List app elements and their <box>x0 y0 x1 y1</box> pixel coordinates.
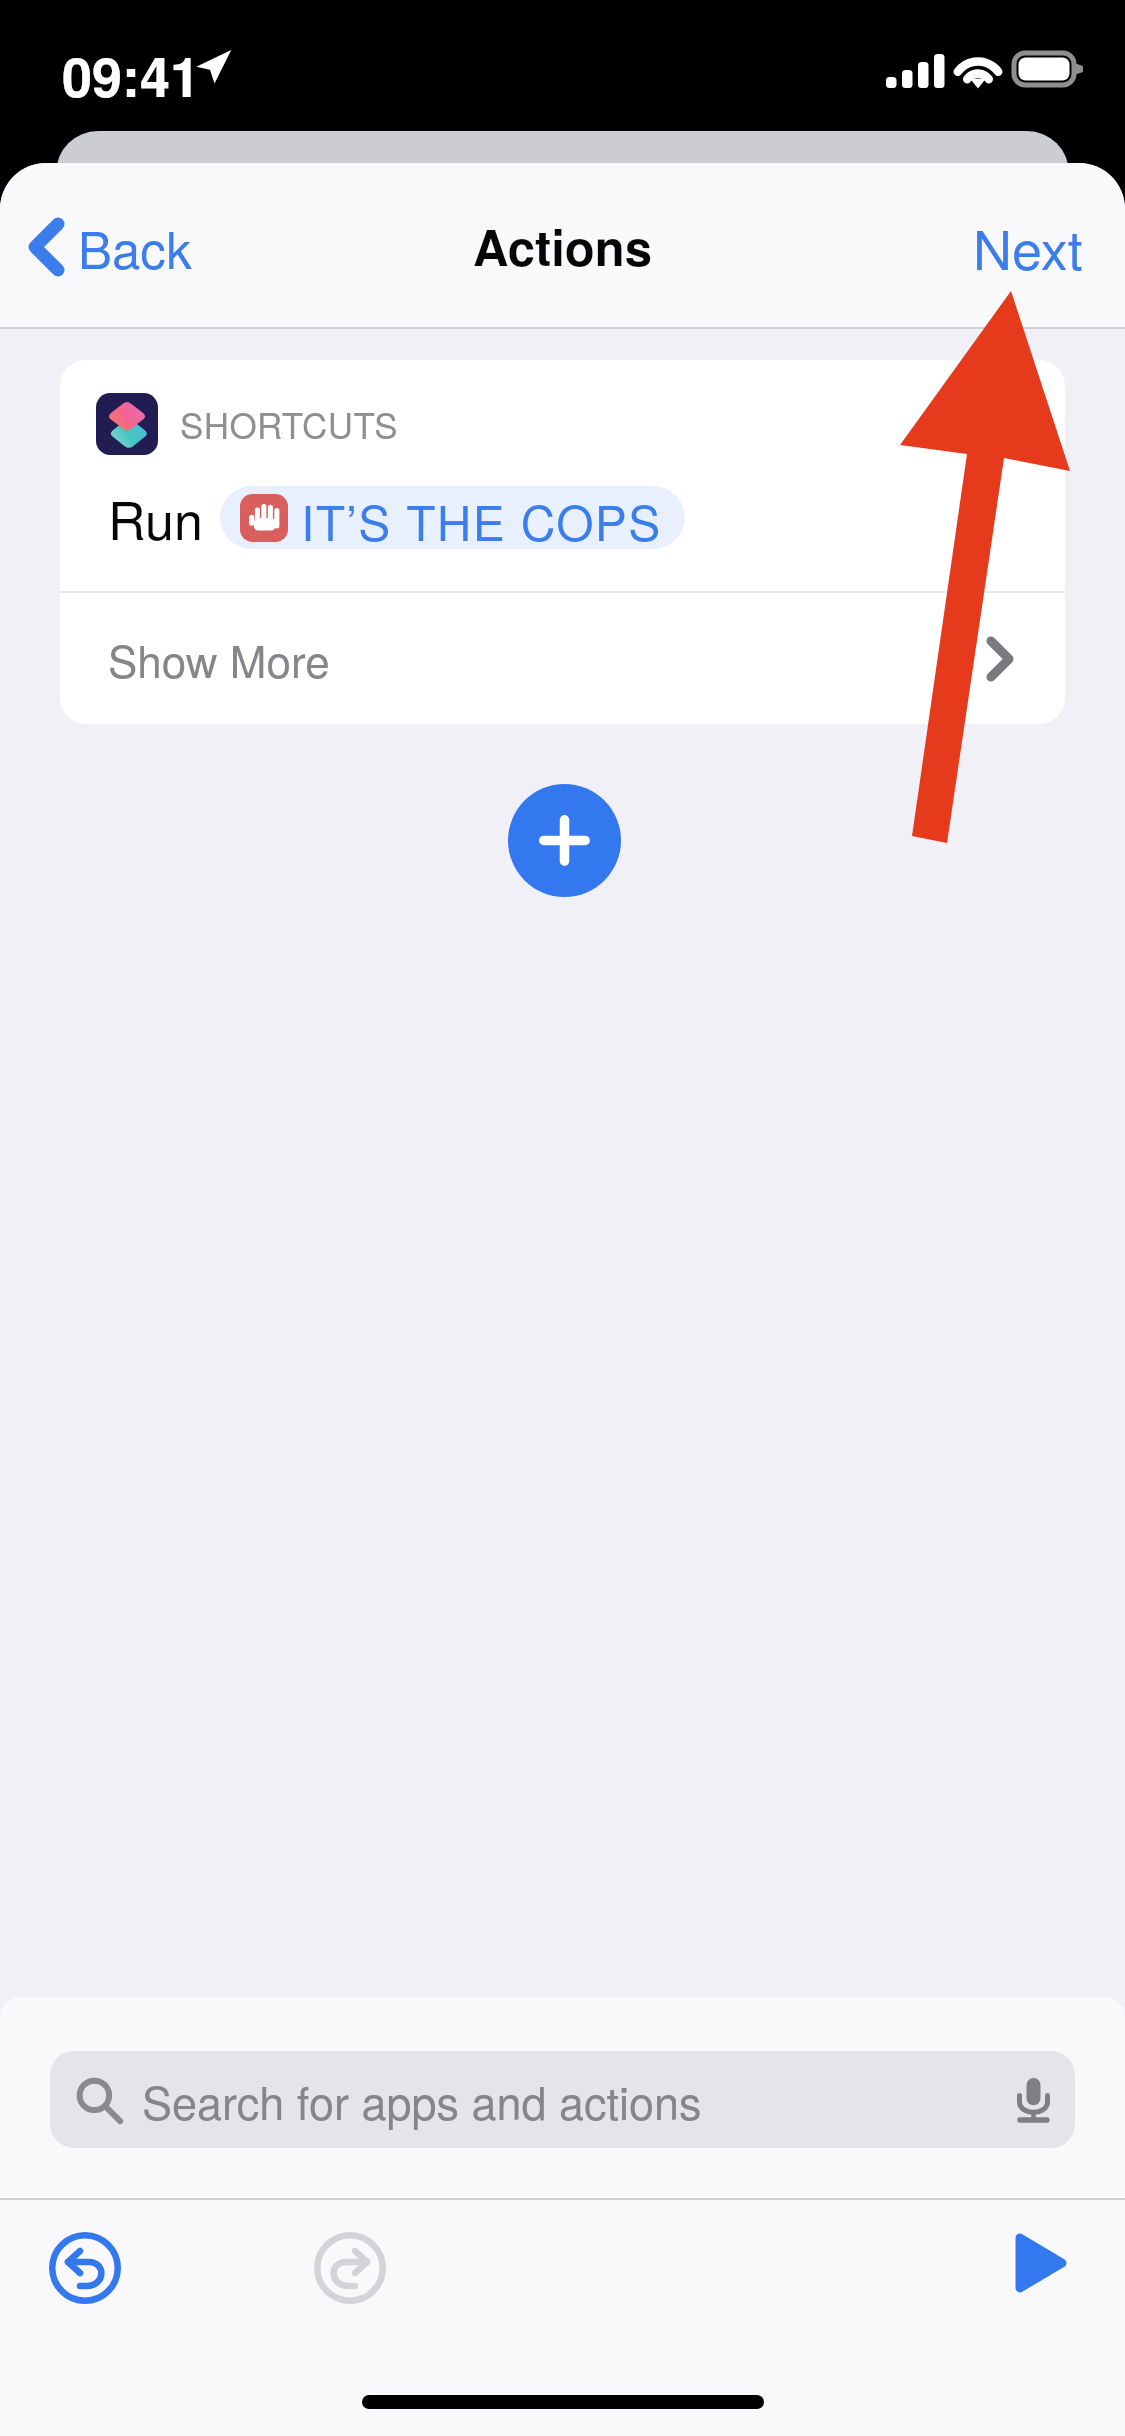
staticText: Search for apps and actions <box>142 2068 702 2132</box>
staticText: IT’S THE COPS <box>301 486 662 549</box>
button[interactable]: Undo <box>49 2232 121 2304</box>
staticText: Next <box>973 208 1083 285</box>
button[interactable]: Add action <box>508 784 621 897</box>
staticText: SHORTCUTS <box>180 399 399 449</box>
staticText: Show More <box>108 627 330 690</box>
staticText: Actions <box>473 211 652 281</box>
staticText: Run <box>108 480 203 554</box>
staticText: Back <box>78 210 192 283</box>
button[interactable]: Next <box>953 188 1103 305</box>
staticText: 09:41 <box>62 36 201 113</box>
button[interactable]: SHORTCUTS <box>60 360 1065 591</box>
button[interactable]: Back <box>10 190 210 303</box>
button[interactable]: Show More <box>60 593 1065 724</box>
button[interactable]: Redo <box>314 2232 386 2304</box>
button[interactable]: Search for apps and actions <box>50 2051 1075 2148</box>
button[interactable]: Run shortcut <box>1000 2222 1082 2304</box>
